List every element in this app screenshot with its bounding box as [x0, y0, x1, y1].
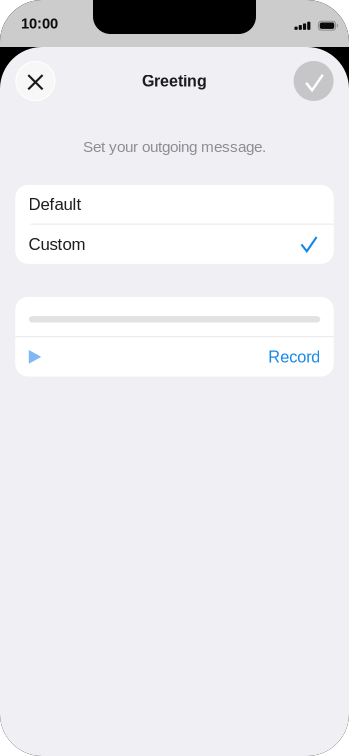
button[interactable]: Play	[29, 337, 63, 377]
button[interactable]: Done	[294, 61, 334, 101]
button[interactable]: Custom	[15, 224, 334, 264]
staticText: Set your outgoing message.	[83, 138, 266, 155]
staticText: 10:00	[21, 15, 58, 32]
button[interactable]: Default	[15, 185, 334, 224]
staticText: Default	[29, 195, 82, 214]
button[interactable]: Close	[15, 61, 55, 101]
staticText: Custom	[29, 235, 86, 254]
button[interactable]: Record	[260, 337, 320, 377]
staticText: Greeting	[142, 72, 207, 90]
staticText: Record	[268, 348, 320, 366]
